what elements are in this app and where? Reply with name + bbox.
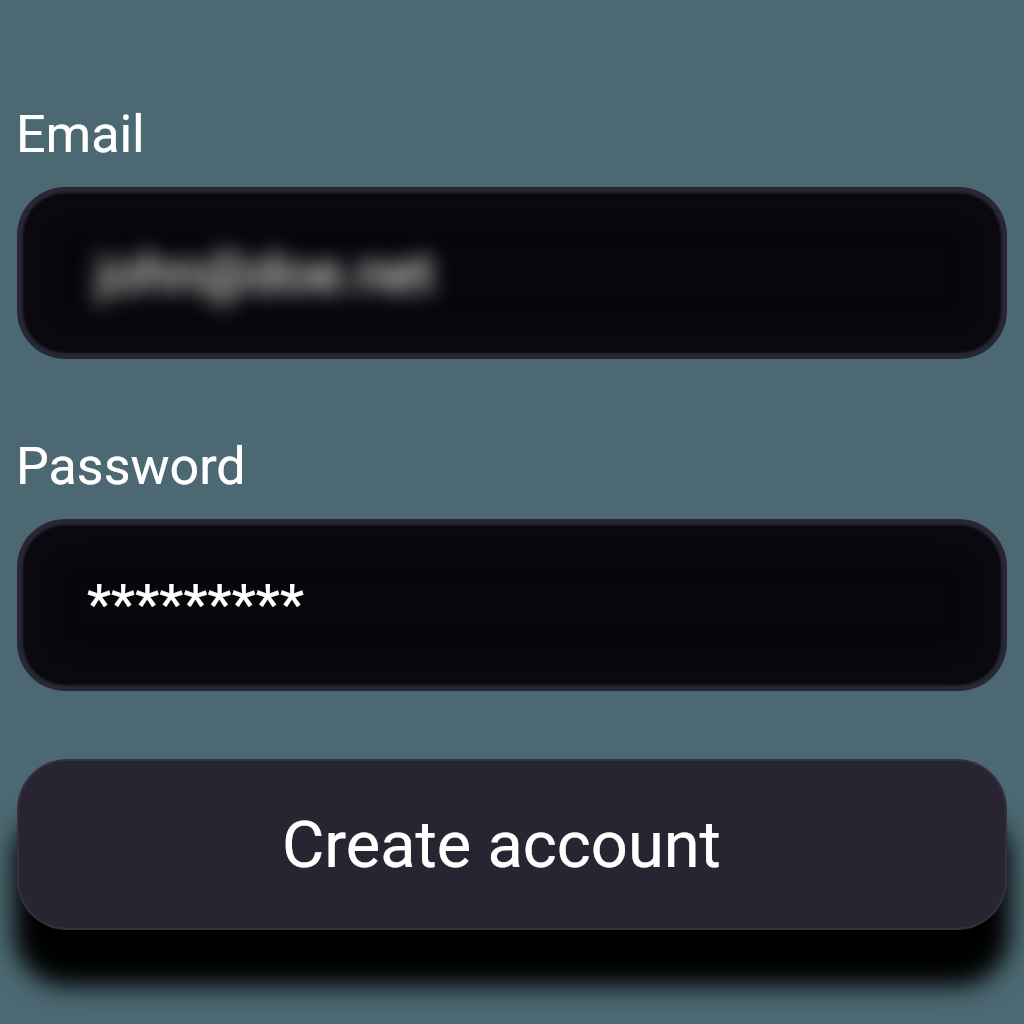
staticText: Create account <box>282 807 721 883</box>
staticText: Password <box>16 436 246 497</box>
staticText: ********* <box>87 572 305 638</box>
staticText: john@doe.net <box>96 241 435 305</box>
button[interactable]: ********* <box>17 519 1007 691</box>
staticText: Email <box>16 104 145 165</box>
button[interactable]: Create account <box>19 761 1005 928</box>
button[interactable]: john@doe.net <box>17 187 1007 359</box>
